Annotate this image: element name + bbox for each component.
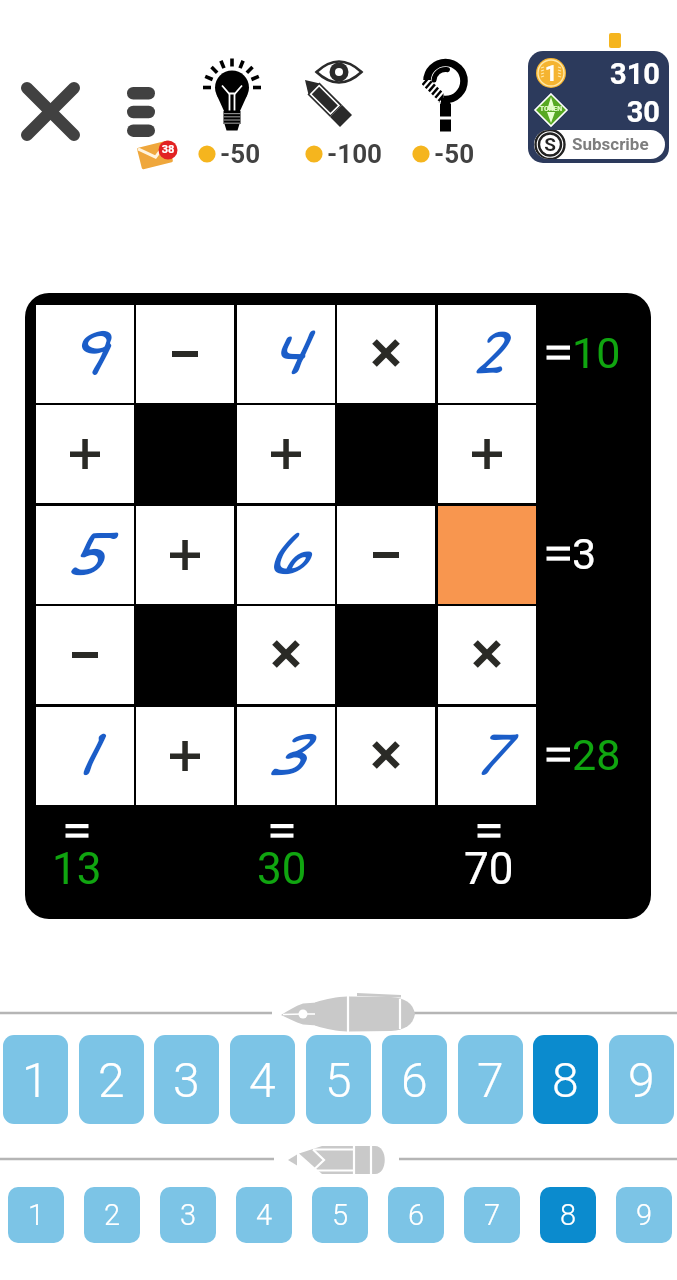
button[interactable]: 4 [237, 305, 335, 403]
staticText: 8 [552, 1052, 579, 1108]
staticText: 30 [528, 95, 660, 129]
staticText: 1 [536, 61, 566, 87]
button[interactable] [237, 606, 335, 704]
staticText: 28 [572, 730, 621, 780]
staticText: 9 [628, 1052, 655, 1108]
button[interactable]: 5 [306, 1035, 371, 1124]
staticText: 2 [104, 1198, 121, 1232]
staticText: 3 [572, 529, 597, 579]
button[interactable]: 7 [438, 707, 536, 805]
button[interactable]: 2 [79, 1035, 144, 1124]
staticText: 2 [467, 315, 507, 391]
button[interactable] [136, 305, 234, 403]
button[interactable]: Hint [186, 42, 278, 172]
button[interactable]: 3 [160, 1187, 216, 1243]
staticText: 310 [528, 57, 660, 91]
button[interactable]: Subscribe [534, 130, 665, 159]
button[interactable]: 9 [36, 305, 134, 403]
button[interactable]: 5 [312, 1187, 368, 1243]
button[interactable]: 6 [388, 1187, 444, 1243]
staticText: 8 [560, 1198, 577, 1232]
staticText: 13 [52, 843, 102, 895]
button[interactable] [337, 506, 435, 604]
button[interactable] [438, 606, 536, 704]
button[interactable]: 7 [464, 1187, 520, 1243]
button[interactable] [136, 707, 234, 805]
staticText: 7 [477, 1052, 504, 1108]
staticText: 10 [572, 328, 621, 378]
staticText: 5 [325, 1052, 352, 1108]
staticText: -50 [434, 139, 475, 169]
button[interactable]: 1 [3, 1035, 68, 1124]
staticText: 4 [249, 1052, 276, 1108]
staticText: 1 [22, 1052, 49, 1108]
staticText: 6 [408, 1198, 425, 1232]
button[interactable] [337, 305, 435, 403]
button[interactable] [438, 405, 536, 503]
button[interactable]: 4 [230, 1035, 295, 1124]
staticText: 3 [180, 1198, 197, 1232]
staticText: 9 [636, 1198, 653, 1232]
button[interactable]: 9 [609, 1035, 674, 1124]
button[interactable] [337, 707, 435, 805]
staticText: 1 [75, 717, 96, 793]
staticText: 38 [159, 143, 177, 156]
button[interactable]: 9 [616, 1187, 672, 1243]
button[interactable]: 6 [382, 1035, 447, 1124]
staticText: 30 [257, 843, 307, 895]
staticText: 2 [98, 1052, 125, 1108]
staticText: Subscribe [572, 134, 649, 154]
button[interactable] [36, 405, 134, 503]
button[interactable] [136, 506, 234, 604]
staticText: 4 [267, 315, 305, 391]
button[interactable]: 2 [84, 1187, 140, 1243]
staticText: 70 [464, 843, 514, 895]
button[interactable]: Check [396, 42, 488, 172]
staticText: 5 [64, 516, 106, 592]
staticText: 9 [65, 315, 106, 391]
button[interactable] [237, 405, 335, 503]
button[interactable]: 5 [36, 506, 134, 604]
button[interactable]: 8 [540, 1187, 596, 1243]
staticText: 3 [266, 717, 306, 793]
staticText: 7 [470, 717, 505, 793]
staticText: -50 [220, 139, 261, 169]
staticText: 4 [256, 1198, 273, 1232]
staticText: 3 [173, 1052, 200, 1108]
button[interactable]: 2 [438, 305, 536, 403]
button[interactable] [36, 606, 134, 704]
button[interactable]: 8 [533, 1035, 598, 1124]
button[interactable]: Reveal [292, 42, 384, 172]
staticText: 6 [401, 1052, 428, 1108]
button[interactable]: 6 [237, 506, 335, 604]
button[interactable]: 3 [237, 707, 335, 805]
staticText: 6 [264, 516, 308, 592]
staticText: -100 [327, 139, 382, 169]
staticText: 7 [484, 1198, 501, 1232]
button[interactable]: 3 [154, 1035, 219, 1124]
staticText: TOKEN [535, 105, 567, 113]
button[interactable]: 4 [236, 1187, 292, 1243]
button[interactable]: 1 [36, 707, 134, 805]
button[interactable]: 7 [458, 1035, 523, 1124]
staticText: S [535, 133, 565, 155]
staticText: 5 [332, 1198, 349, 1232]
button[interactable]: Coins and tokens [528, 51, 669, 163]
button[interactable]: 1 [8, 1187, 64, 1243]
staticText: 1 [28, 1198, 45, 1232]
button[interactable]: Messages [120, 78, 182, 170]
button[interactable]: Close [12, 73, 89, 150]
